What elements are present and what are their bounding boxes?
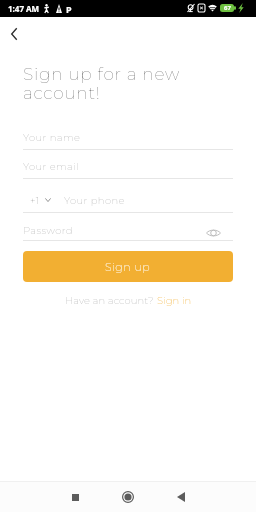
staticText: +1 bbox=[30, 194, 40, 206]
button[interactable]: Your name bbox=[23, 131, 81, 143]
button[interactable]: Sign in bbox=[157, 294, 192, 306]
button[interactable]: Home bbox=[104, 482, 151, 512]
button[interactable]: Back bbox=[2, 22, 25, 45]
button[interactable]: Show password bbox=[204, 224, 222, 242]
button[interactable]: Password bbox=[23, 224, 73, 236]
button[interactable]: Recent apps bbox=[52, 482, 99, 512]
staticText: 1:47 AM bbox=[8, 3, 40, 14]
staticText: P bbox=[66, 3, 72, 15]
staticText: 67 bbox=[224, 4, 231, 12]
button[interactable]: +1 bbox=[30, 194, 125, 206]
button[interactable]: Sign up bbox=[23, 251, 233, 282]
button[interactable]: Back bbox=[157, 482, 204, 512]
button[interactable]: Your email bbox=[23, 160, 80, 172]
staticText: Have an account? bbox=[65, 294, 157, 306]
staticText: Sign up bbox=[105, 260, 151, 273]
staticText: Sign up for a new account! bbox=[23, 64, 180, 103]
staticText: Your phone bbox=[64, 194, 125, 206]
